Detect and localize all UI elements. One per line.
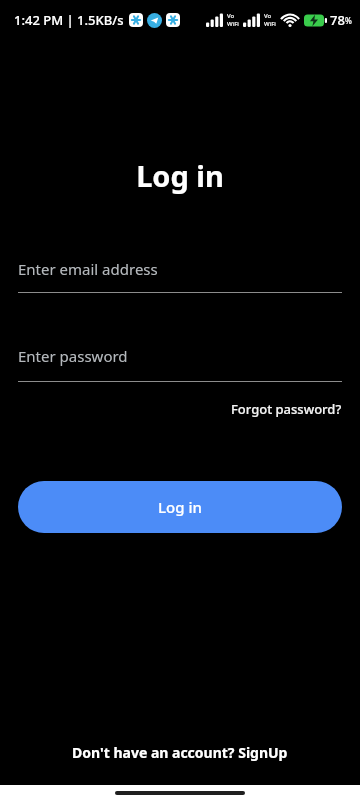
button[interactable]: Enter email address [18,259,342,293]
staticText: Log in [158,497,202,517]
button[interactable]: Log in [18,481,342,533]
staticText: Enter password [18,346,128,366]
staticText: 1:42 PM | 1.5KB/s [14,11,124,29]
staticText: % [345,15,352,26]
staticText: Log in [0,156,360,195]
button[interactable]: Don't have an account? SignUp [72,743,288,762]
staticText: WiFi [227,20,239,28]
button[interactable]: Enter password [18,346,342,382]
staticText: Vo [227,12,235,20]
staticText: Vo [264,12,272,20]
staticText: WiFi [264,20,276,28]
button[interactable]: Forgot password? [231,400,342,418]
staticText: 78 [330,11,345,29]
staticText: Enter email address [18,259,158,279]
